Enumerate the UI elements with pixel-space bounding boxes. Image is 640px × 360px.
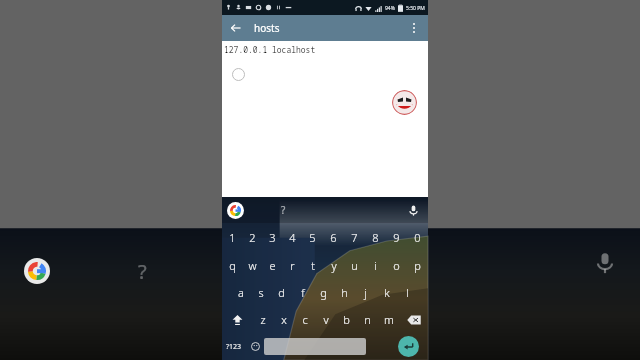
staticText: d bbox=[278, 285, 285, 300]
button[interactable]: Save hosts file bbox=[392, 90, 417, 115]
staticText: 9 bbox=[393, 230, 400, 245]
button[interactable]: 0 bbox=[407, 223, 428, 251]
staticText: 127.0.0.1 localhost bbox=[224, 44, 316, 55]
button[interactable]: l bbox=[397, 279, 418, 306]
button[interactable]: d bbox=[271, 279, 292, 306]
staticText: ? bbox=[281, 203, 286, 217]
button[interactable]: b bbox=[336, 306, 357, 333]
staticText: i bbox=[374, 258, 377, 273]
staticText: p bbox=[414, 258, 421, 273]
staticText: g bbox=[320, 285, 327, 300]
staticText: u bbox=[351, 258, 358, 273]
button[interactable]: w bbox=[242, 251, 262, 279]
staticText: r bbox=[290, 258, 295, 273]
staticText: c bbox=[302, 312, 308, 327]
button[interactable]: More options bbox=[404, 18, 424, 38]
staticText: 5 bbox=[309, 230, 316, 245]
staticText: e bbox=[269, 258, 276, 273]
button[interactable]: m bbox=[378, 306, 399, 333]
button[interactable]: o bbox=[386, 251, 407, 279]
staticText: ? bbox=[138, 258, 147, 285]
button[interactable]: g bbox=[313, 279, 334, 306]
staticText: l bbox=[406, 285, 409, 300]
button[interactable]: n bbox=[357, 306, 378, 333]
staticText: 1 bbox=[229, 230, 236, 245]
staticText: ?123 bbox=[226, 342, 242, 352]
staticText: f bbox=[301, 285, 305, 300]
staticText: q bbox=[229, 258, 236, 273]
staticText: n bbox=[364, 312, 371, 327]
button[interactable]: 2 bbox=[242, 223, 262, 251]
button[interactable]: 3 bbox=[262, 223, 282, 251]
staticText: 7 bbox=[351, 230, 358, 245]
staticText: z bbox=[260, 312, 266, 327]
button[interactable]: x bbox=[273, 306, 294, 333]
button[interactable]: 8 bbox=[365, 223, 386, 251]
button[interactable]: Emoji bbox=[246, 333, 264, 360]
staticText: 4 bbox=[289, 230, 296, 245]
button[interactable]: 7 bbox=[344, 223, 365, 251]
button[interactable]: Backspace bbox=[399, 306, 428, 333]
staticText: k bbox=[384, 285, 390, 300]
button[interactable]: e bbox=[262, 251, 282, 279]
button[interactable]: Google bbox=[227, 202, 244, 219]
button[interactable]: Shift bbox=[222, 306, 252, 333]
staticText: 0 bbox=[414, 230, 421, 245]
staticText: b bbox=[343, 312, 350, 327]
staticText: v bbox=[323, 312, 329, 327]
button[interactable]: 5 bbox=[302, 223, 323, 251]
button[interactable]: t bbox=[302, 251, 323, 279]
button[interactable]: j bbox=[355, 279, 376, 306]
staticText: 5:50 PM bbox=[406, 5, 425, 12]
button[interactable]: 4 bbox=[282, 223, 302, 251]
button[interactable]: z bbox=[252, 306, 273, 333]
staticText: h bbox=[341, 285, 348, 300]
button[interactable]: 6 bbox=[323, 223, 344, 251]
button[interactable]: u bbox=[344, 251, 365, 279]
button[interactable]: k bbox=[376, 279, 397, 306]
staticText: y bbox=[331, 258, 337, 273]
button[interactable]: Navigate up bbox=[226, 18, 246, 38]
button[interactable]: Enter bbox=[398, 336, 419, 357]
button[interactable]: q bbox=[222, 251, 242, 279]
button[interactable]: i bbox=[365, 251, 386, 279]
button[interactable]: c bbox=[294, 306, 315, 333]
button[interactable]: Space bbox=[264, 338, 366, 355]
staticText: 2 bbox=[249, 230, 256, 245]
staticText: hosts bbox=[254, 21, 280, 35]
staticText: a bbox=[238, 285, 244, 300]
staticText: x bbox=[281, 312, 287, 327]
button[interactable]: v bbox=[315, 306, 336, 333]
button[interactable]: 9 bbox=[386, 223, 407, 251]
button[interactable]: a bbox=[231, 279, 251, 306]
staticText: s bbox=[258, 285, 264, 300]
staticText: t bbox=[311, 258, 315, 273]
staticText: j bbox=[364, 285, 367, 300]
button[interactable]: y bbox=[323, 251, 344, 279]
button[interactable]: s bbox=[251, 279, 271, 306]
button[interactable]: f bbox=[292, 279, 313, 306]
button[interactable]: Voice input bbox=[404, 201, 422, 219]
staticText: 6 bbox=[330, 230, 337, 245]
staticText: w bbox=[248, 258, 257, 273]
button[interactable]: p bbox=[407, 251, 428, 279]
staticText: 3 bbox=[269, 230, 276, 245]
button[interactable]: ?123 bbox=[222, 333, 246, 360]
button[interactable]: h bbox=[334, 279, 355, 306]
staticText: 8 bbox=[372, 230, 379, 245]
button[interactable]: 1 bbox=[222, 223, 242, 251]
staticText: m bbox=[384, 312, 394, 327]
staticText: 94% bbox=[385, 5, 395, 12]
button[interactable]: r bbox=[282, 251, 302, 279]
staticText: o bbox=[393, 258, 400, 273]
